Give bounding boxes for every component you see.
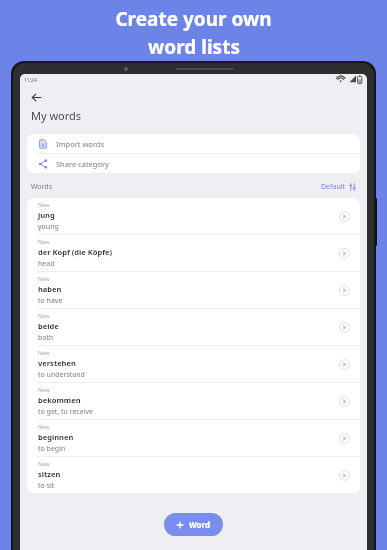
button[interactable]: Share category (27, 154, 360, 173)
staticText: sitzen (38, 469, 61, 479)
staticText: to get, to receive (38, 407, 93, 417)
staticText: New (38, 460, 50, 467)
staticText: New (38, 386, 50, 393)
button[interactable]: New (27, 383, 360, 419)
staticText: beide (38, 321, 59, 331)
staticText: Default (321, 182, 346, 192)
staticText: word lists (148, 34, 240, 60)
button[interactable]: New (27, 346, 360, 382)
staticText: to sit (38, 481, 55, 491)
button[interactable]: New (27, 272, 360, 308)
button[interactable]: New (27, 198, 360, 234)
staticText: haben (38, 284, 62, 294)
button[interactable]: Word (164, 513, 223, 536)
button[interactable]: Play pronunciation (336, 430, 352, 446)
staticText: to begin (38, 444, 66, 454)
staticText: bekommen (38, 395, 81, 405)
button[interactable]: New (27, 457, 360, 493)
staticText: New (38, 275, 50, 282)
button[interactable]: Play pronunciation (336, 282, 352, 298)
button[interactable]: Back (25, 86, 47, 108)
button[interactable]: New (27, 235, 360, 271)
staticText: My words (31, 108, 82, 123)
staticText: verstehen (38, 358, 76, 368)
staticText: New (38, 423, 50, 430)
button[interactable]: Play pronunciation (336, 208, 352, 224)
staticText: Word (189, 519, 211, 530)
staticText: jung (38, 210, 55, 220)
button[interactable]: Play pronunciation (336, 245, 352, 261)
staticText: New (38, 238, 50, 245)
staticText: New (38, 312, 50, 319)
staticText: der Kopf (die Köpfe) (38, 247, 113, 257)
staticText: beginnen (38, 432, 74, 442)
staticText: 11:24 (24, 77, 37, 84)
button[interactable]: Play pronunciation (336, 393, 352, 409)
button[interactable]: Import words (27, 134, 360, 153)
staticText: head (38, 259, 55, 269)
button[interactable]: Play pronunciation (336, 356, 352, 372)
staticText: both (38, 333, 54, 343)
button[interactable]: New (27, 309, 360, 345)
button[interactable]: Default (321, 182, 356, 192)
staticText: Create your own (115, 6, 272, 32)
staticText: young (38, 222, 59, 232)
staticText: Import words (56, 139, 105, 149)
button[interactable]: New (27, 420, 360, 456)
staticText: to have (38, 296, 63, 306)
staticText: New (38, 349, 50, 356)
staticText: Share category (56, 159, 109, 169)
staticText: to understand (38, 370, 85, 380)
button[interactable]: Play pronunciation (336, 467, 352, 483)
button[interactable]: Play pronunciation (336, 319, 352, 335)
staticText: New (38, 201, 50, 208)
staticText: Words (31, 182, 53, 192)
